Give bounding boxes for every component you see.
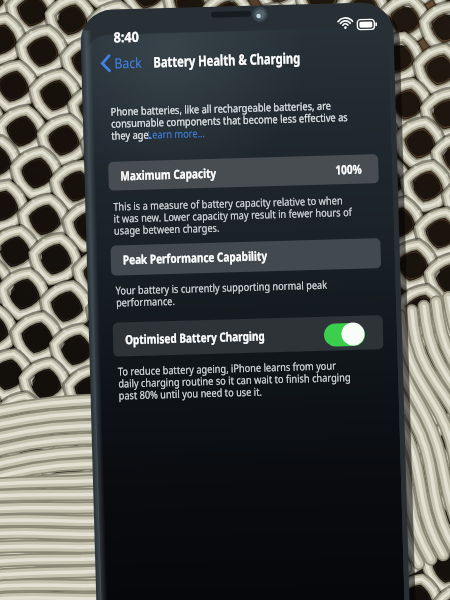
button[interactable] xyxy=(116,120,178,134)
button[interactable] xyxy=(112,158,382,187)
button[interactable] xyxy=(112,242,382,272)
button[interactable]: Back xyxy=(104,46,158,72)
button[interactable] xyxy=(112,319,382,353)
button[interactable]: Optimised Battery Charging toggle, on xyxy=(320,324,367,351)
